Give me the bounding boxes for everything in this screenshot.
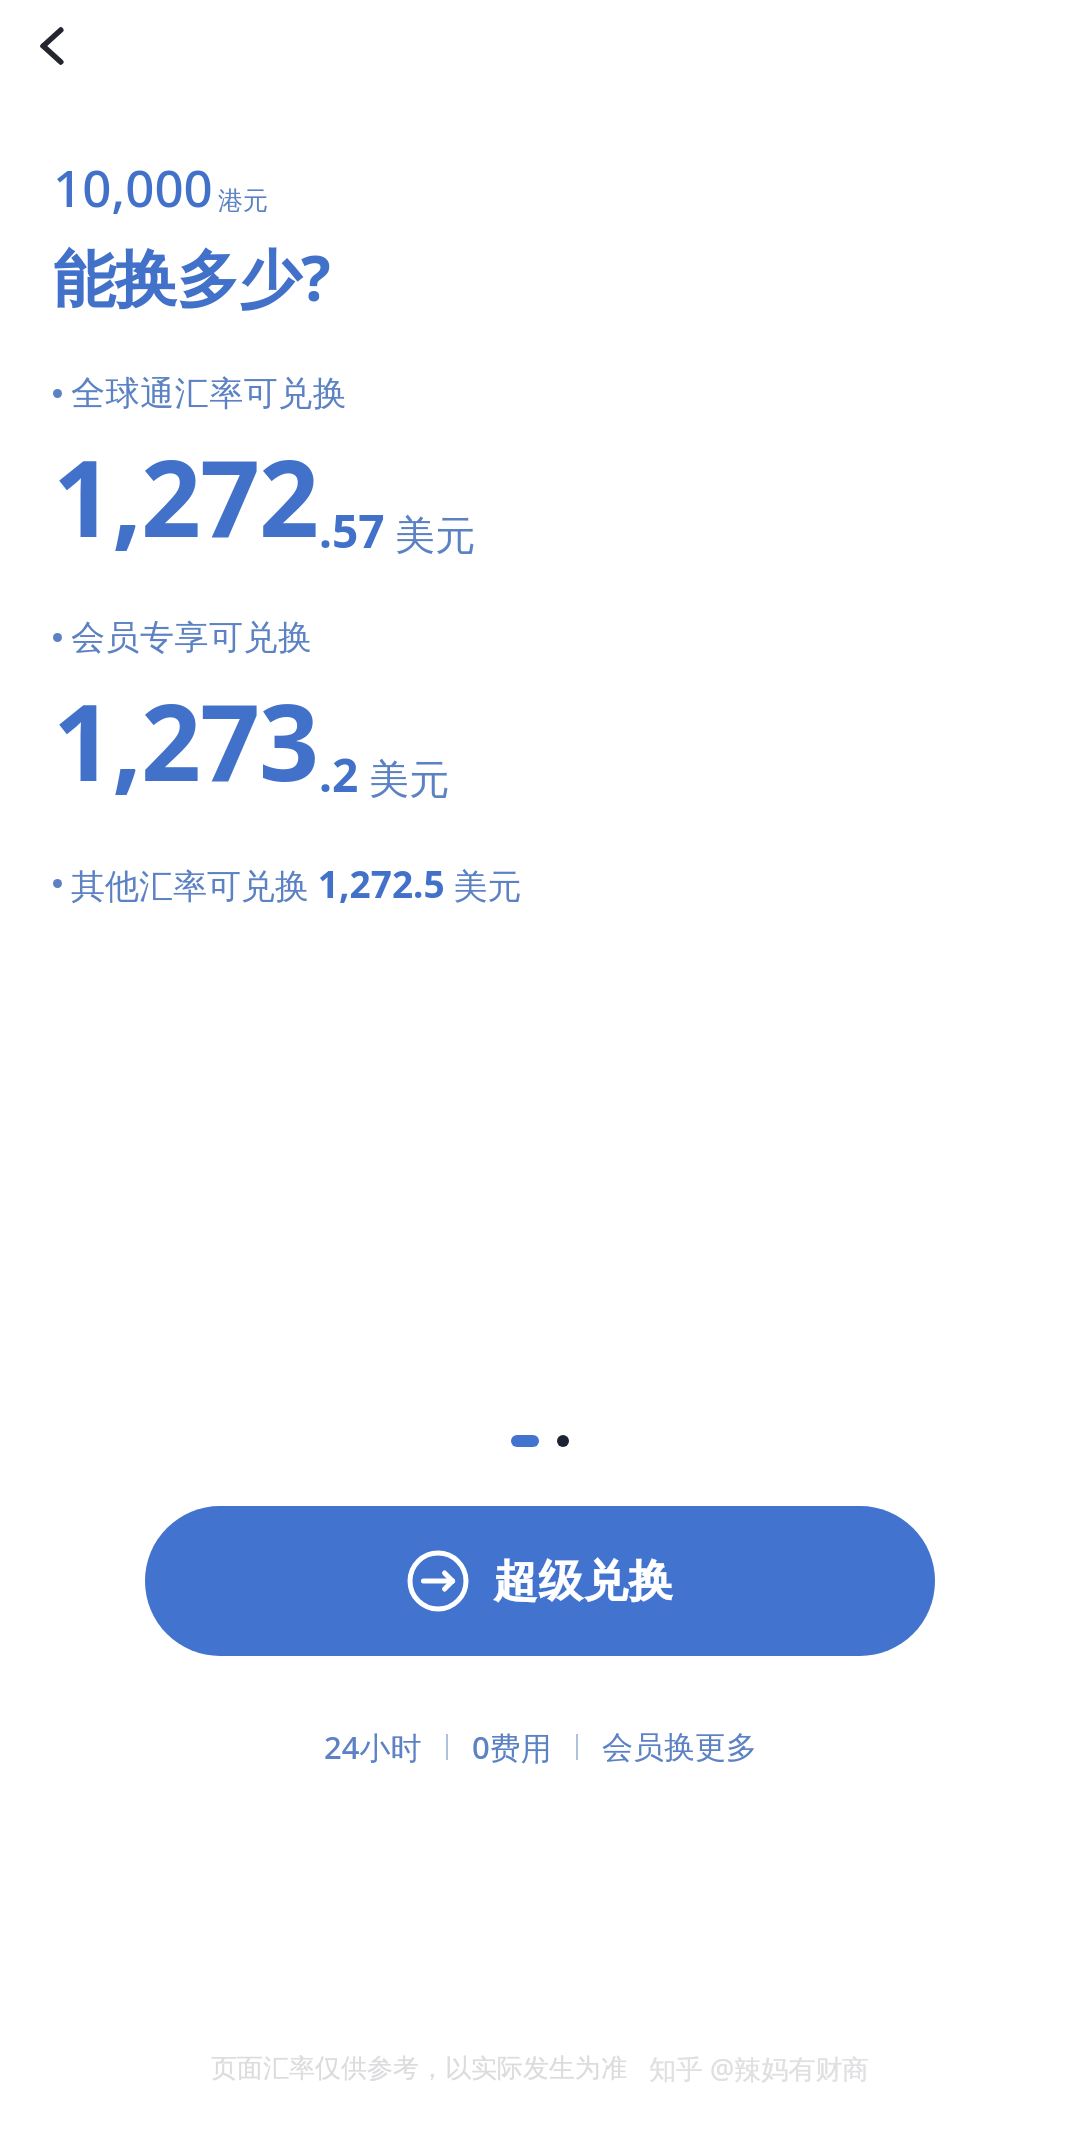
staticText: 美元 [395, 510, 475, 560]
staticText: 页面汇率仅供参考，以实际发生为准 [211, 2052, 627, 2085]
staticText: .2 [319, 743, 359, 806]
staticText: 会员专享可兑换 [71, 616, 313, 659]
staticText: 美元 [369, 754, 449, 804]
button[interactable]: 超级兑换 [145, 1506, 935, 1656]
staticText: 知乎 @辣妈有财商 [649, 2050, 870, 2087]
staticText: 超级兑换 [493, 1554, 673, 1609]
staticText: 能换多少? [53, 235, 331, 320]
staticText: .57 [319, 499, 385, 562]
staticText: 24小时 [324, 1726, 422, 1768]
staticText: 1,272 [53, 425, 319, 568]
staticText: 会员换更多 [602, 1728, 757, 1767]
button[interactable]: Back [20, 10, 92, 82]
staticText: 全球通汇率可兑换 [71, 372, 347, 415]
staticText: 0费用 [472, 1726, 552, 1768]
button[interactable]: 0费用 [466, 1722, 558, 1772]
staticText: 其他汇率可兑换 1,272.5 美元 [71, 858, 522, 908]
button[interactable]: 24小时 [318, 1722, 428, 1772]
staticText: 10,000 [53, 152, 213, 221]
staticText: 港元 [218, 185, 268, 216]
staticText: 1,273 [53, 669, 319, 812]
button[interactable]: 会员换更多 [596, 1724, 763, 1771]
